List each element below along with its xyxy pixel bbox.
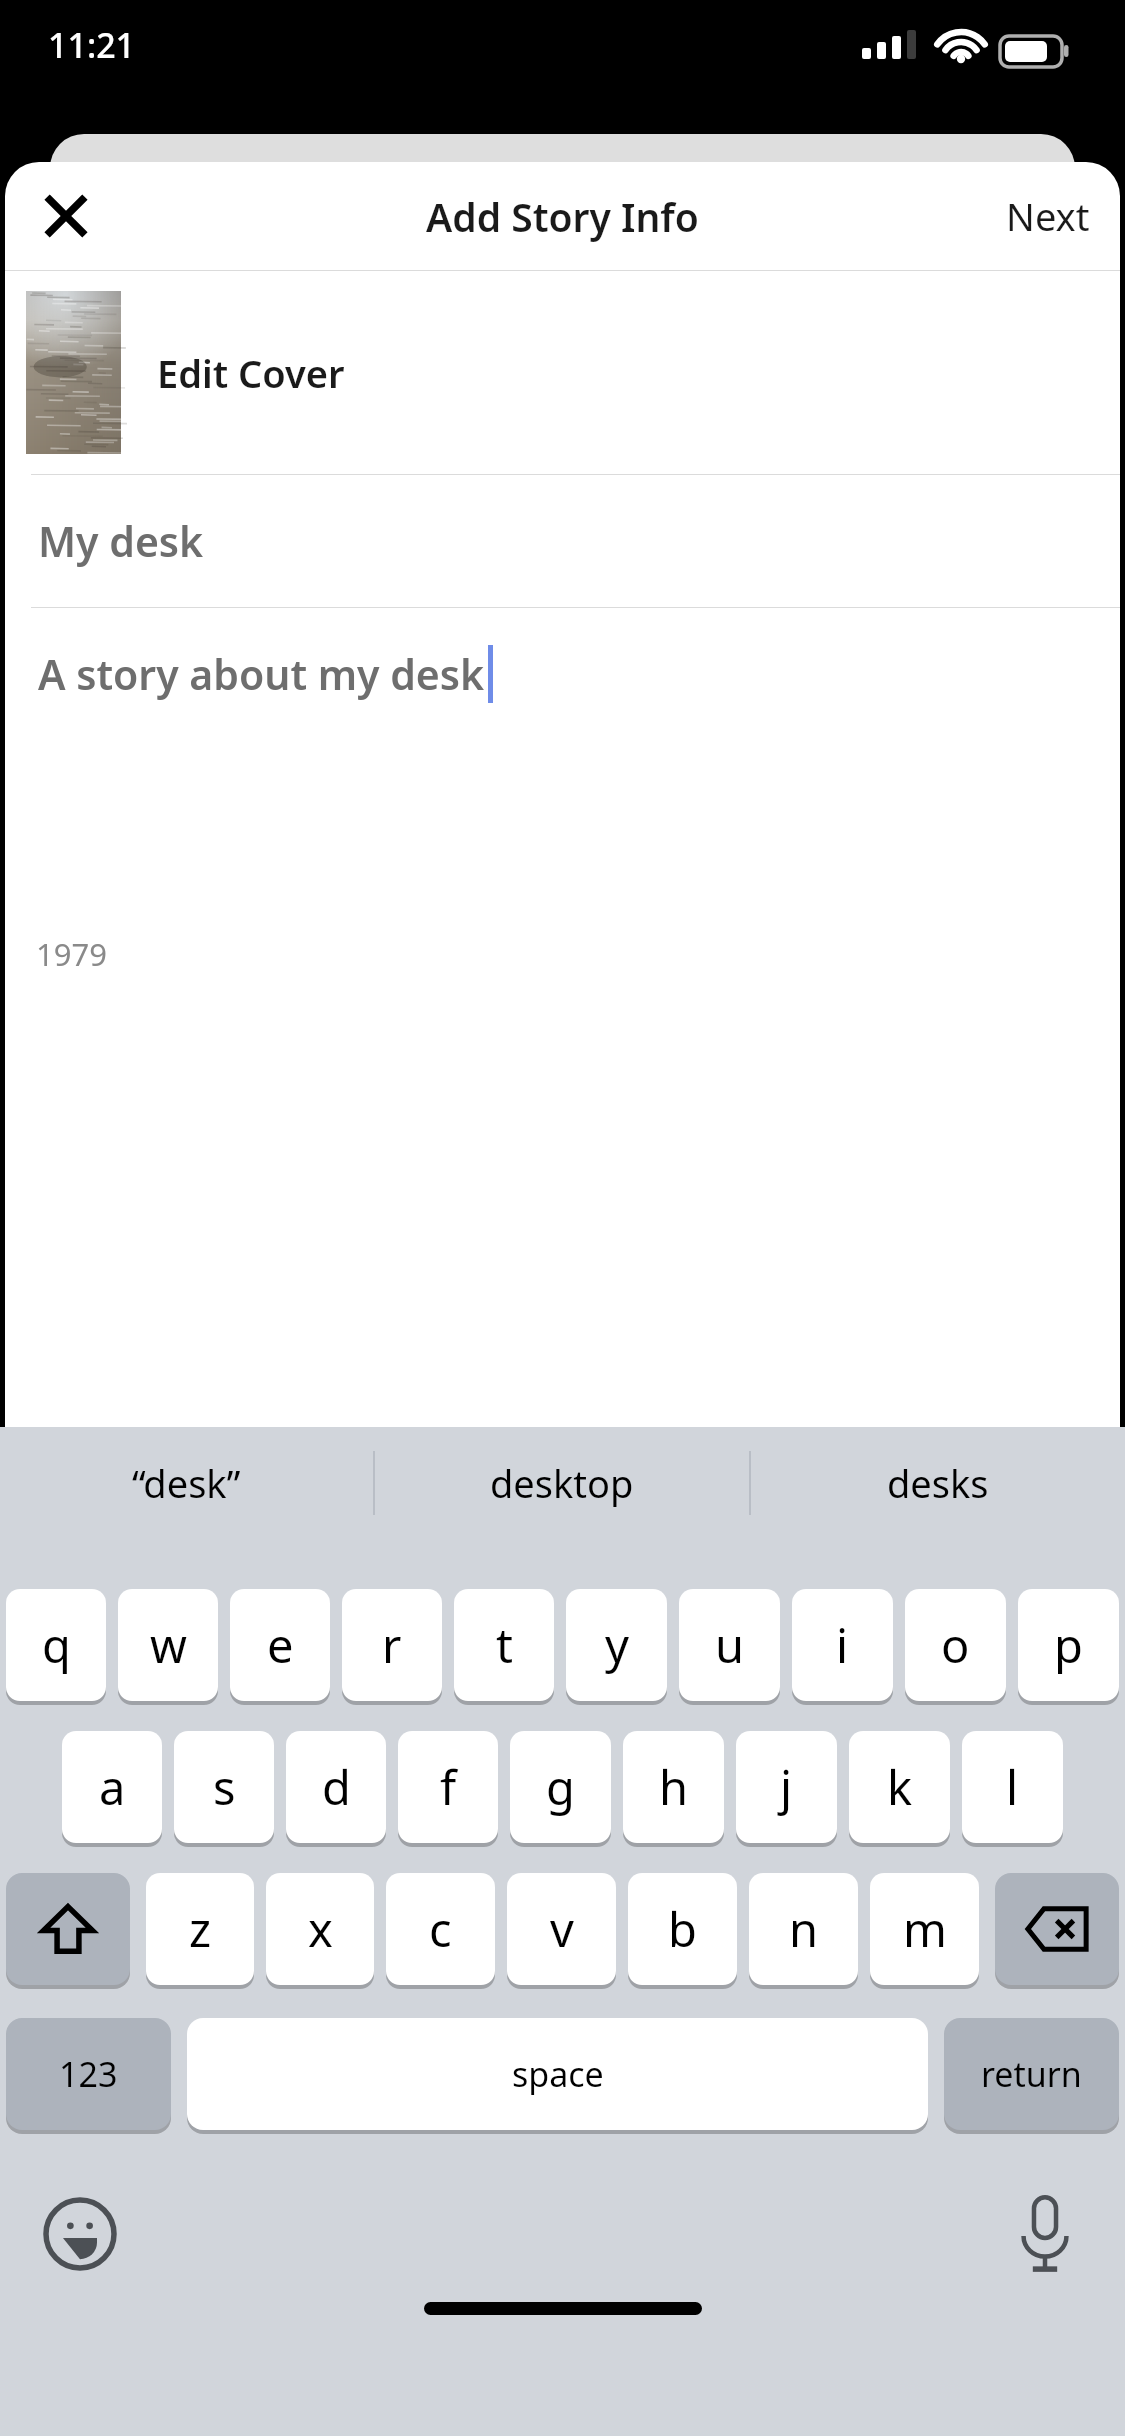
- button[interactable]: h: [623, 1731, 724, 1847]
- staticText: d: [322, 1755, 351, 1819]
- staticText: 1979: [36, 933, 107, 975]
- staticText: p: [1054, 1613, 1083, 1677]
- staticText: Edit Cover: [157, 347, 345, 399]
- button[interactable]: A story about my desk: [5, 608, 1120, 740]
- staticText: Next: [1006, 190, 1090, 242]
- staticText: return: [981, 2051, 1082, 2097]
- button[interactable]: q: [6, 1589, 106, 1705]
- staticText: space: [512, 2051, 604, 2097]
- button[interactable]: r: [342, 1589, 442, 1705]
- button[interactable]: j: [736, 1731, 837, 1847]
- staticText: desktop: [490, 1457, 634, 1509]
- staticText: u: [715, 1613, 745, 1677]
- button[interactable]: u: [679, 1589, 780, 1705]
- button[interactable]: n: [749, 1873, 858, 1989]
- staticText: k: [887, 1755, 913, 1819]
- button[interactable]: m: [870, 1873, 979, 1989]
- button[interactable]: a: [62, 1731, 162, 1847]
- button[interactable]: Close: [23, 173, 109, 259]
- staticText: x: [308, 1897, 333, 1961]
- button[interactable]: Backspace: [995, 1873, 1119, 1989]
- button[interactable]: p: [1018, 1589, 1119, 1705]
- staticText: i: [836, 1613, 849, 1677]
- button[interactable]: “desk”: [0, 1427, 373, 1539]
- staticText: v: [550, 1897, 574, 1961]
- button[interactable]: g: [510, 1731, 611, 1847]
- staticText: 11:21: [48, 22, 136, 68]
- button[interactable]: t: [454, 1589, 554, 1705]
- button[interactable]: Next: [976, 162, 1120, 270]
- staticText: c: [429, 1897, 452, 1961]
- staticText: f: [440, 1755, 457, 1819]
- staticText: m: [903, 1897, 947, 1961]
- staticText: y: [605, 1613, 629, 1677]
- button[interactable]: s: [174, 1731, 274, 1847]
- button[interactable]: Shift: [6, 1873, 130, 1989]
- button[interactable]: 123: [6, 2018, 171, 2134]
- button[interactable]: o: [905, 1589, 1006, 1705]
- button[interactable]: b: [628, 1873, 737, 1989]
- staticText: a: [99, 1755, 126, 1819]
- staticText: j: [780, 1755, 793, 1819]
- button[interactable]: desktop: [375, 1427, 749, 1539]
- button[interactable]: Emoji: [34, 2188, 126, 2280]
- staticText: z: [189, 1897, 212, 1961]
- button[interactable]: c: [386, 1873, 495, 1989]
- button[interactable]: l: [962, 1731, 1063, 1847]
- staticText: t: [496, 1613, 513, 1677]
- staticText: e: [267, 1613, 294, 1677]
- button[interactable]: i: [792, 1589, 893, 1705]
- staticText: “desk”: [132, 1457, 241, 1509]
- button[interactable]: w: [118, 1589, 218, 1705]
- staticText: 123: [59, 2051, 118, 2097]
- staticText: w: [150, 1613, 187, 1677]
- staticText: n: [789, 1897, 819, 1961]
- staticText: desks: [887, 1457, 989, 1509]
- button[interactable]: e: [230, 1589, 330, 1705]
- button[interactable]: z: [146, 1873, 254, 1989]
- staticText: r: [382, 1613, 402, 1677]
- button[interactable]: Dictation: [999, 2188, 1091, 2280]
- staticText: My desk: [38, 513, 204, 569]
- button[interactable]: v: [507, 1873, 616, 1989]
- staticText: g: [546, 1755, 575, 1819]
- staticText: h: [659, 1755, 689, 1819]
- button[interactable]: k: [849, 1731, 950, 1847]
- button[interactable]: My desk: [5, 475, 1120, 607]
- staticText: q: [42, 1613, 71, 1677]
- button[interactable]: x: [266, 1873, 374, 1989]
- button[interactable]: space: [187, 2018, 928, 2134]
- staticText: s: [213, 1755, 236, 1819]
- button[interactable]: y: [566, 1589, 667, 1705]
- button[interactable]: return: [944, 2018, 1119, 2134]
- button[interactable]: d: [286, 1731, 386, 1847]
- staticText: b: [668, 1897, 697, 1961]
- staticText: l: [1006, 1755, 1019, 1819]
- staticText: Add Story Info: [426, 190, 699, 243]
- button[interactable]: desks: [751, 1427, 1125, 1539]
- button[interactable]: Edit Cover: [5, 271, 1120, 474]
- staticText: A story about my desk: [38, 646, 485, 702]
- staticText: o: [941, 1613, 970, 1677]
- button[interactable]: f: [398, 1731, 498, 1847]
